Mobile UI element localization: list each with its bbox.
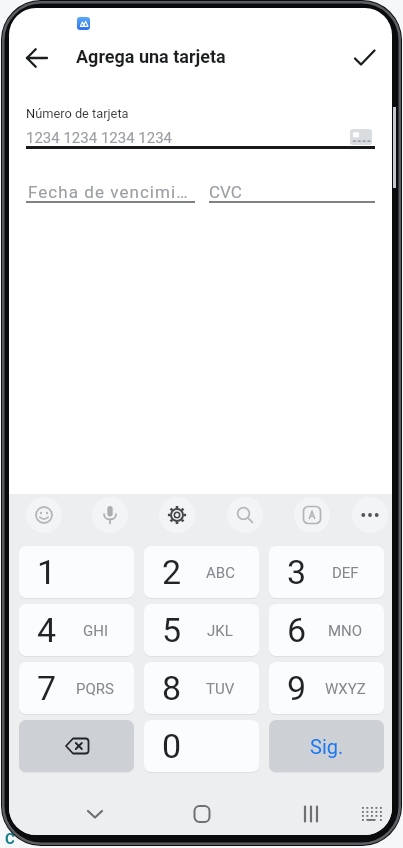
button[interactable]: 6 bbox=[269, 604, 384, 656]
button[interactable] bbox=[227, 497, 263, 533]
staticText: Fecha de vencimi… bbox=[28, 182, 189, 202]
button[interactable] bbox=[19, 40, 55, 76]
staticText: 3 bbox=[287, 552, 307, 592]
staticText: 4 bbox=[37, 610, 57, 650]
staticText: Agrega una tarjeta bbox=[76, 46, 226, 67]
staticText: 5 bbox=[162, 610, 182, 650]
button[interactable]: 8 bbox=[144, 662, 259, 714]
button[interactable] bbox=[184, 796, 220, 832]
staticText: WXYZ bbox=[325, 680, 366, 698]
button[interactable] bbox=[19, 720, 134, 772]
staticText: 7 bbox=[37, 668, 57, 708]
staticText: 2 bbox=[162, 552, 182, 592]
staticText: JKL bbox=[207, 622, 233, 640]
button[interactable]: 9 bbox=[269, 662, 384, 714]
staticText: ABC bbox=[206, 564, 235, 582]
button[interactable] bbox=[293, 796, 329, 832]
button[interactable] bbox=[294, 497, 330, 533]
button[interactable] bbox=[77, 796, 113, 832]
button[interactable]: CVC bbox=[209, 174, 375, 206]
staticText: 1234 1234 1234 1234 bbox=[26, 129, 173, 147]
staticText: C bbox=[5, 830, 15, 848]
button[interactable]: 2 bbox=[144, 546, 259, 598]
button[interactable]: 0 bbox=[144, 720, 259, 772]
staticText: TUV bbox=[206, 680, 235, 698]
button[interactable]: 3 bbox=[269, 546, 384, 598]
staticText: 8 bbox=[162, 668, 182, 708]
staticText: 9 bbox=[287, 668, 307, 708]
button[interactable] bbox=[26, 497, 62, 533]
button[interactable]: 7 bbox=[19, 662, 134, 714]
button[interactable] bbox=[347, 40, 383, 76]
staticText: Sig. bbox=[310, 735, 344, 758]
staticText: 1 bbox=[37, 552, 57, 592]
staticText: GHI bbox=[83, 622, 108, 640]
button[interactable] bbox=[352, 497, 388, 533]
staticText: PQRS bbox=[76, 680, 114, 698]
staticText: MNO bbox=[328, 622, 363, 640]
button[interactable] bbox=[159, 497, 195, 533]
staticText: 0 bbox=[162, 726, 182, 766]
button[interactable] bbox=[353, 796, 389, 832]
button[interactable]: 5 bbox=[144, 604, 259, 656]
staticText: 6 bbox=[287, 610, 307, 650]
staticText: CVC bbox=[209, 182, 242, 202]
staticText: Número de tarjeta bbox=[26, 106, 129, 121]
button[interactable]: 4 bbox=[19, 604, 134, 656]
staticText: DEF bbox=[332, 564, 359, 582]
button[interactable] bbox=[92, 497, 128, 533]
button[interactable]: Fecha de vencimi… bbox=[26, 174, 195, 206]
button[interactable]: 1234 1234 1234 1234 bbox=[26, 121, 375, 146]
button[interactable]: 1 bbox=[19, 546, 134, 598]
button[interactable]: Sig. bbox=[269, 720, 384, 772]
